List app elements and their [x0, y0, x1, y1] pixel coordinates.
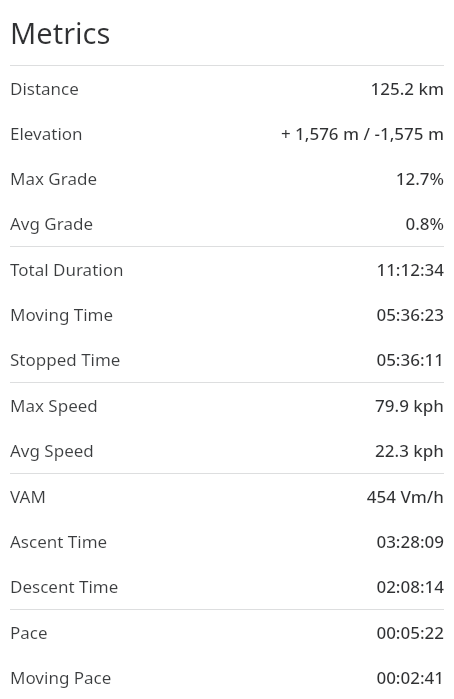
staticText: 00:05:22 [56, 621, 444, 644]
staticText: Avg Speed [10, 439, 94, 462]
staticText: 125.2 km [87, 77, 444, 100]
button[interactable]: Max Speed [0, 383, 454, 428]
staticText: Stopped Time [10, 348, 121, 371]
staticText: 05:36:23 [122, 303, 444, 326]
staticText: Moving Pace [10, 666, 112, 689]
button[interactable]: Moving Time [0, 292, 454, 337]
staticText: Descent Time [10, 575, 119, 598]
staticText: 12.7% [106, 167, 444, 190]
staticText: Max Grade [10, 167, 98, 190]
staticText: Distance [10, 77, 79, 100]
staticText: Avg Grade [10, 212, 94, 235]
staticText: VAM [10, 485, 46, 508]
button[interactable]: Moving Pace [0, 655, 454, 699]
button[interactable]: Elevation [0, 111, 454, 156]
button[interactable]: Distance [0, 66, 454, 111]
button[interactable]: Max Grade [0, 156, 454, 201]
staticText: Moving Time [10, 303, 114, 326]
staticText: 0.8% [102, 212, 444, 235]
button[interactable]: Pace [0, 610, 454, 655]
button[interactable]: Ascent Time [0, 519, 454, 564]
staticText: 22.3 kph [102, 439, 444, 462]
staticText: Metrics [10, 13, 111, 52]
staticText: Elevation [10, 122, 83, 145]
staticText: Pace [10, 621, 48, 644]
staticText: 05:36:11 [129, 348, 444, 371]
staticText: Ascent Time [10, 530, 108, 553]
button[interactable]: Avg Speed [0, 428, 454, 473]
staticText: + 1,576 m / -1,575 m [91, 122, 444, 145]
staticText: 454 Vm/h [54, 485, 444, 508]
button[interactable]: Avg Grade [0, 201, 454, 246]
button[interactable]: Descent Time [0, 564, 454, 609]
staticText: Total Duration [10, 258, 124, 281]
staticText: 79.9 kph [106, 394, 444, 417]
staticText: Max Speed [10, 394, 98, 417]
button[interactable]: VAM [0, 474, 454, 519]
staticText: 03:28:09 [116, 530, 444, 553]
staticText: 00:02:41 [120, 666, 444, 689]
button[interactable]: Stopped Time [0, 337, 454, 382]
button[interactable]: Total Duration [0, 247, 454, 292]
staticText: 11:12:34 [132, 258, 444, 281]
staticText: 02:08:14 [127, 575, 444, 598]
